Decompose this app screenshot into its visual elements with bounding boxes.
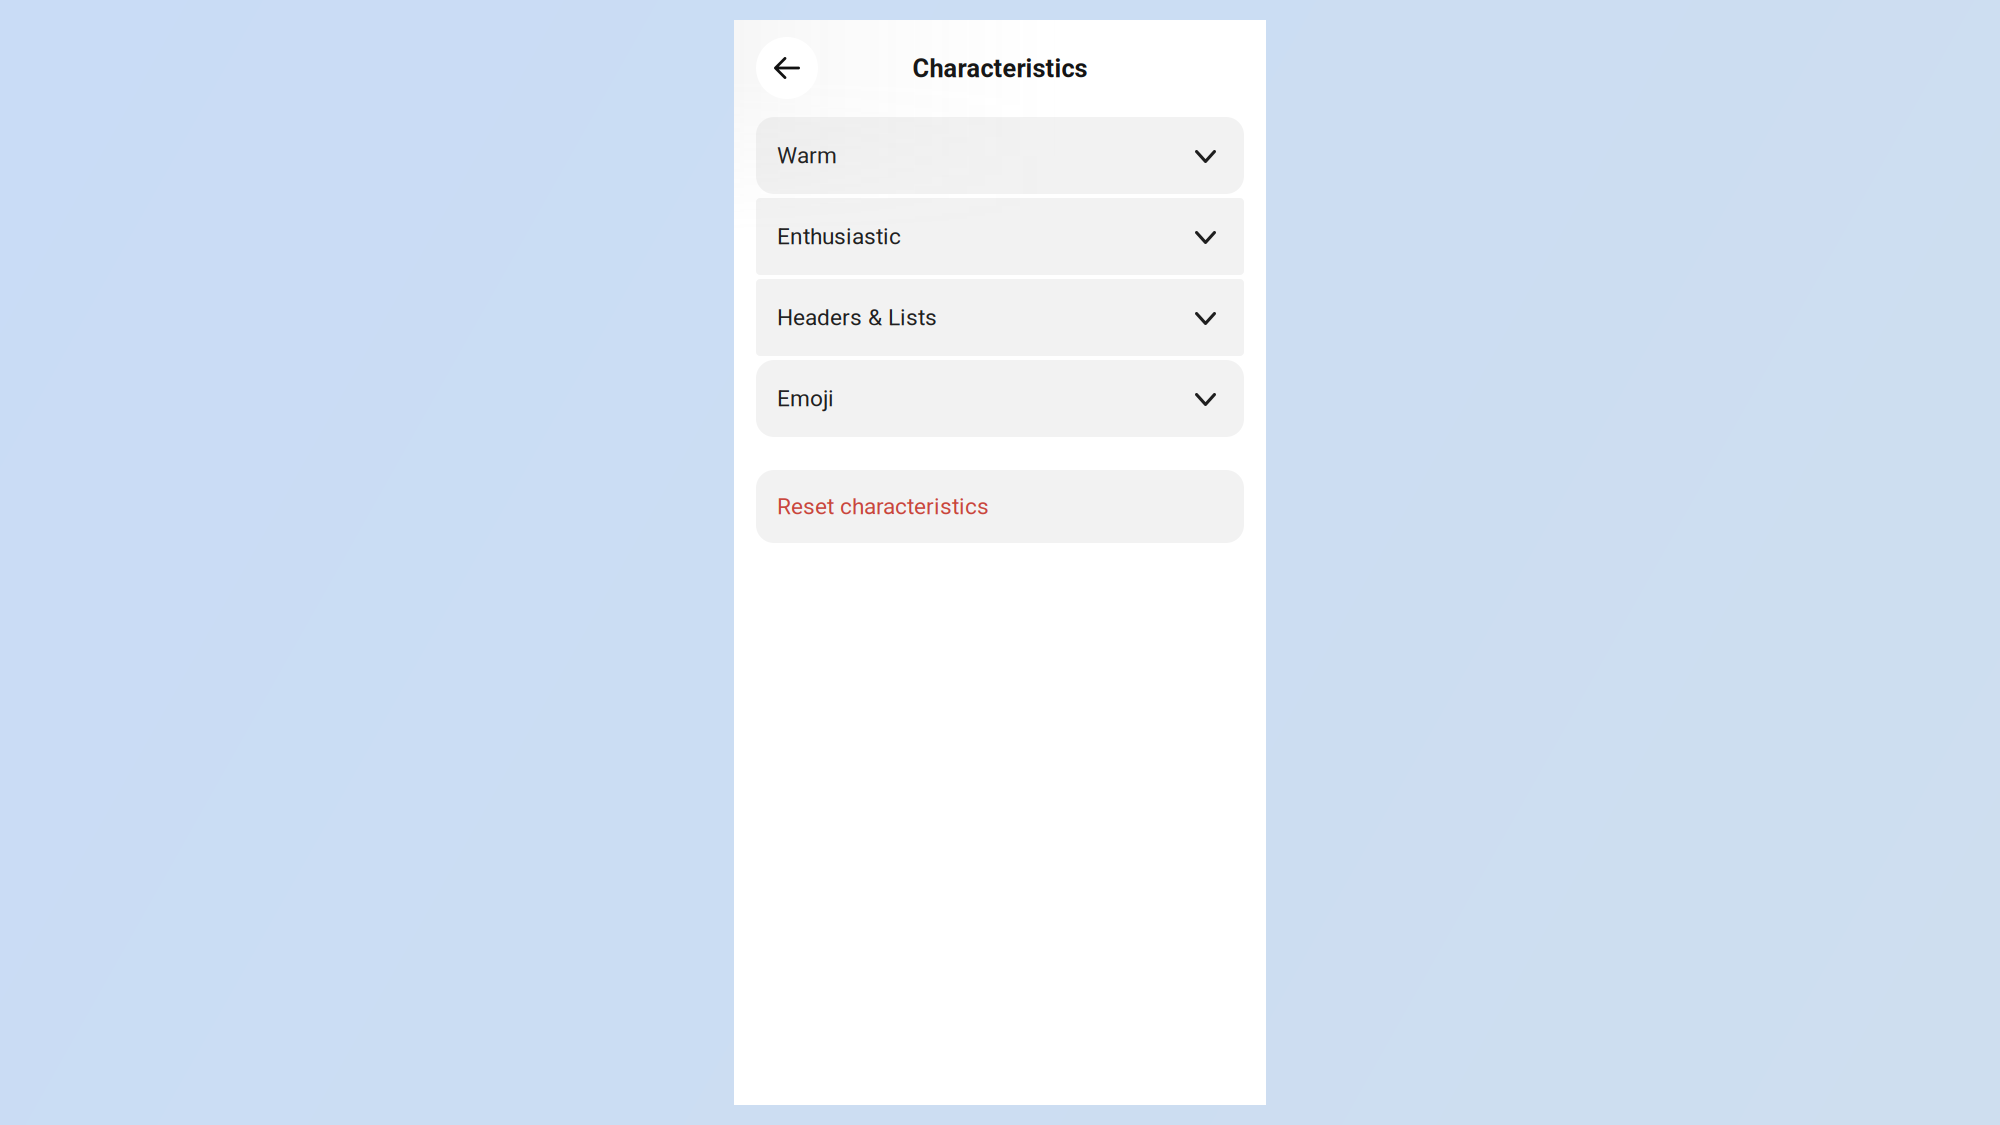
staticText: Reset characteristics (777, 493, 989, 520)
staticText: Characteristics (912, 54, 1087, 83)
button[interactable]: Headers & Lists (756, 279, 1244, 356)
staticText: Emoji (777, 385, 834, 412)
button[interactable]: Warm (756, 117, 1244, 194)
staticText: Warm (777, 142, 837, 169)
staticText: Headers & Lists (777, 304, 937, 331)
button[interactable]: Reset characteristics (756, 470, 1244, 543)
button[interactable]: Emoji (756, 360, 1244, 437)
staticText: Enthusiastic (777, 223, 901, 250)
button[interactable]: Enthusiastic (756, 198, 1244, 275)
button[interactable]: Back (756, 37, 818, 99)
